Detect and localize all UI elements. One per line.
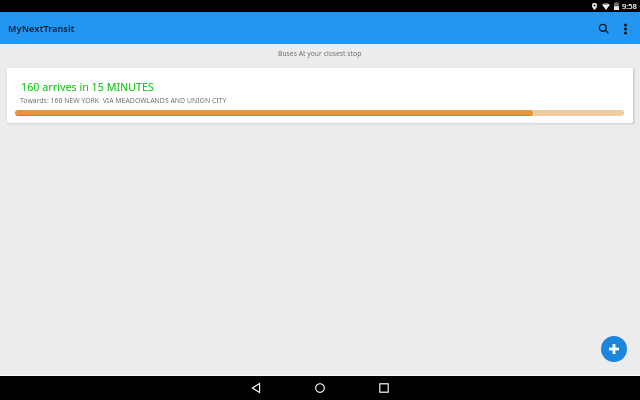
- button[interactable]: 160 arrives in 15 MINUTES: [7, 68, 633, 123]
- staticText: 9:58: [622, 1, 637, 11]
- staticText: Buses At your closest stop: [278, 49, 362, 58]
- button[interactable]: Home: [288, 376, 352, 400]
- staticText: MyNextTransit: [8, 22, 75, 34]
- button[interactable]: Recents: [352, 376, 416, 400]
- button[interactable]: More options: [613, 16, 637, 42]
- button[interactable]: Add: [601, 336, 627, 362]
- staticText: Towards: 160 NEW YORK VIA MEADOWLANDS AN…: [20, 96, 227, 105]
- staticText: 160 arrives in 15 MINUTES: [21, 80, 154, 95]
- button[interactable]: Search: [591, 16, 617, 42]
- button[interactable]: Back: [224, 376, 288, 400]
